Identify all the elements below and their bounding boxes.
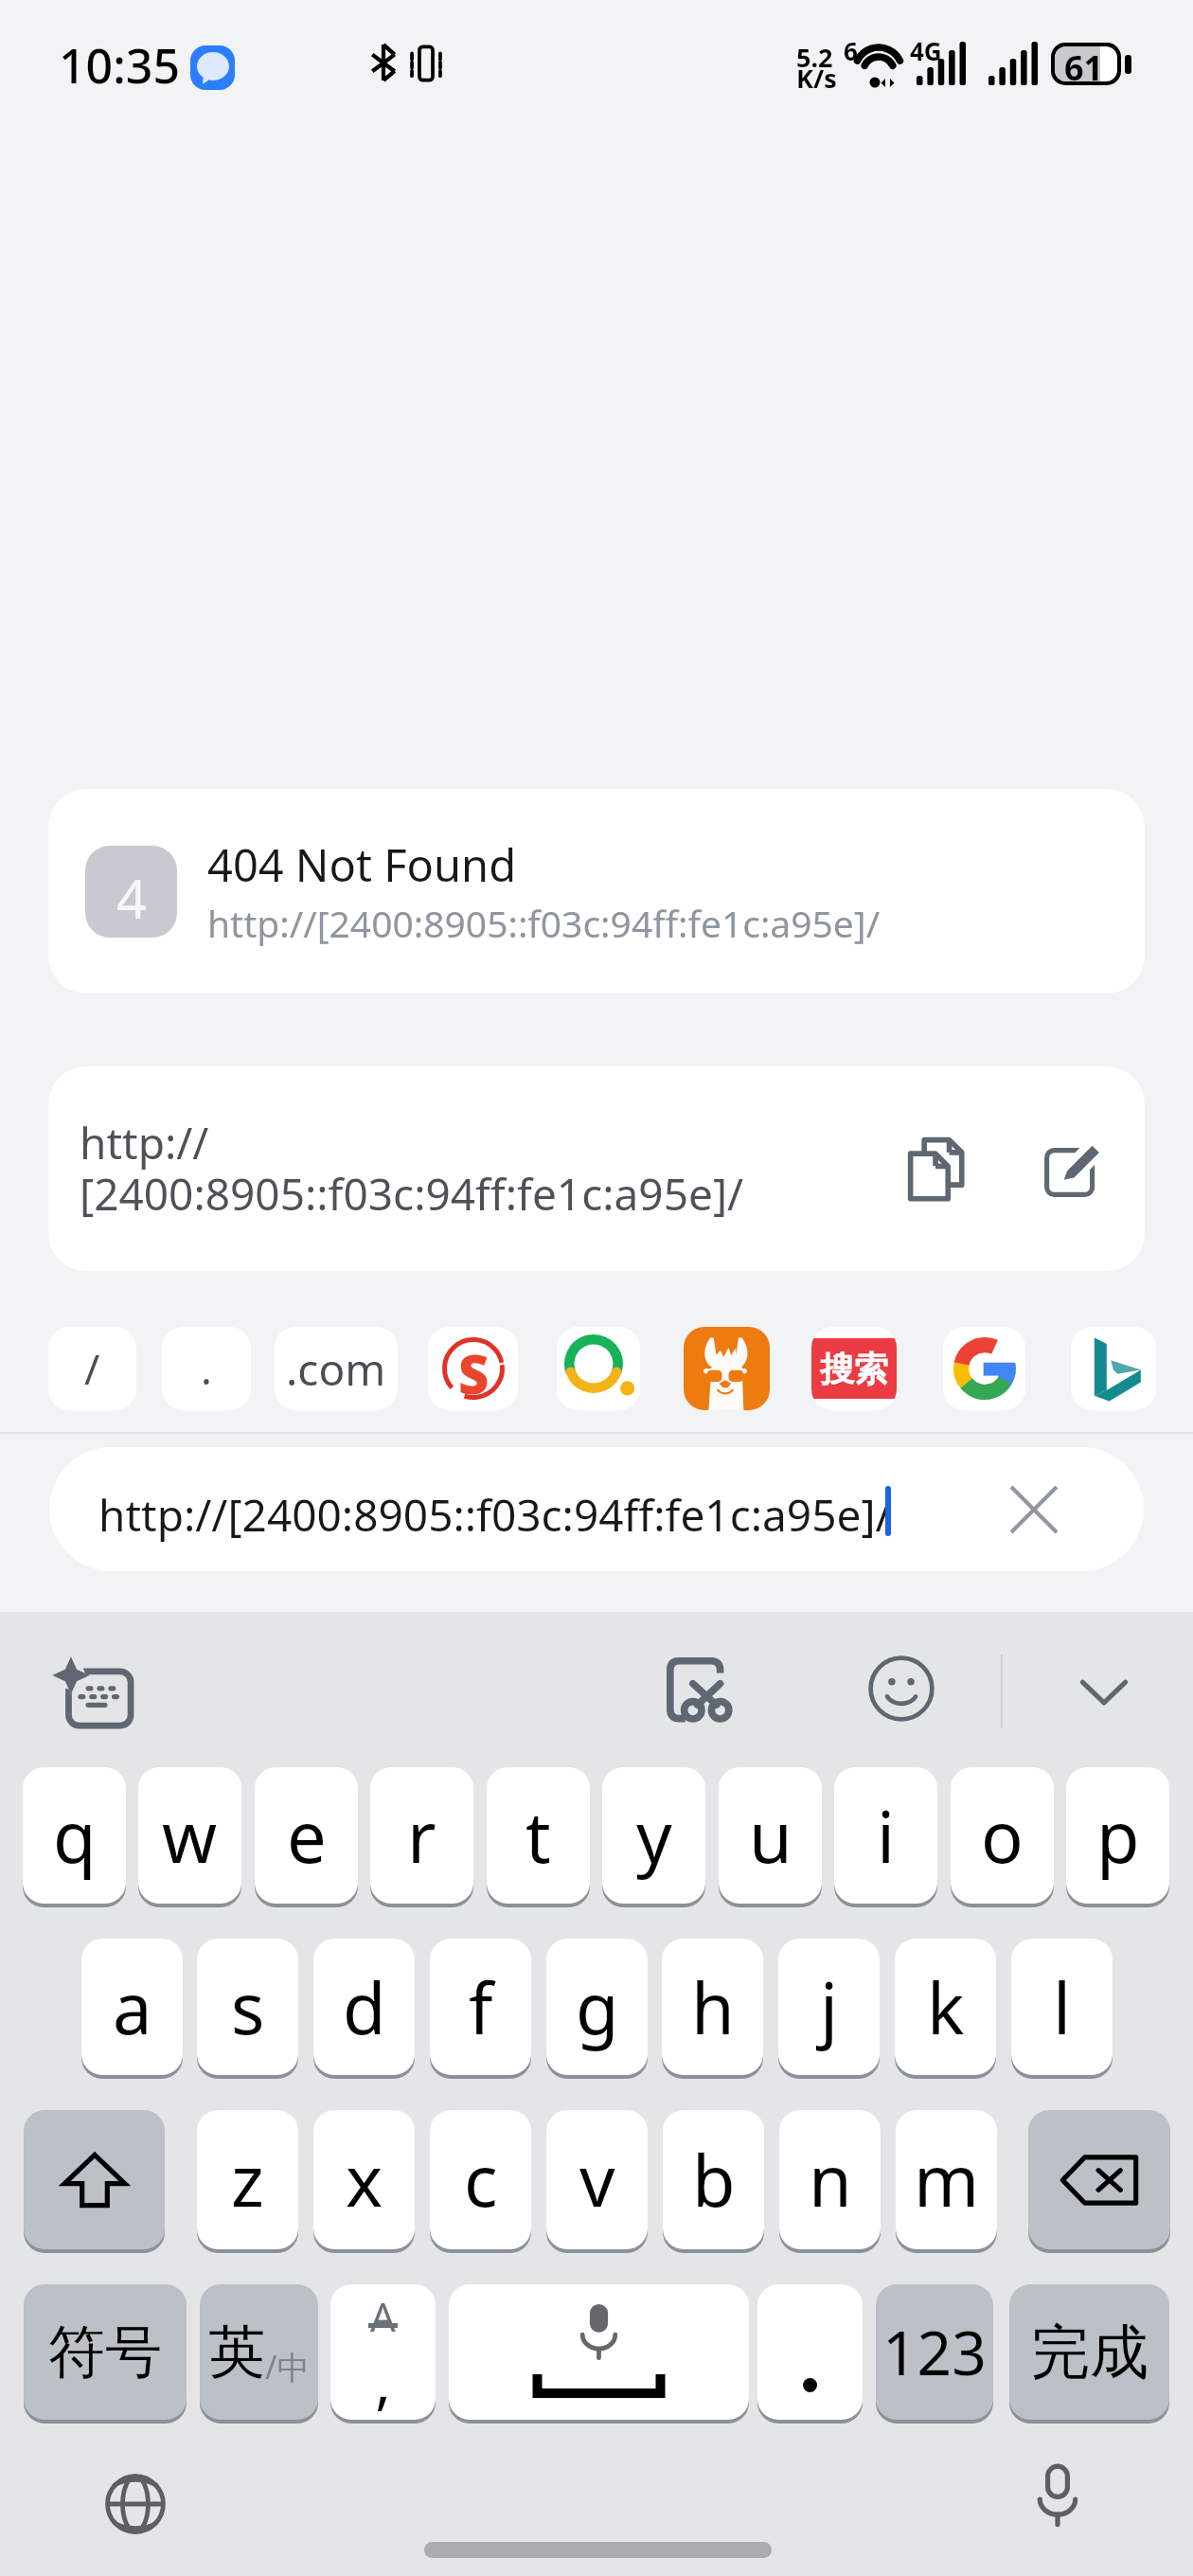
button[interactable]: i xyxy=(834,1767,937,1904)
button[interactable]: m xyxy=(896,2110,997,2249)
staticText: o xyxy=(981,1788,1024,1884)
staticText: p xyxy=(1096,1788,1140,1884)
button[interactable]: 英 xyxy=(200,2284,318,2420)
button[interactable]: o xyxy=(951,1767,1054,1904)
button[interactable]: 搜索 xyxy=(811,1327,897,1410)
button[interactable]: x xyxy=(313,2110,415,2249)
button[interactable]: A xyxy=(330,2284,436,2420)
button[interactable]: 4 xyxy=(48,789,1145,993)
staticText: u xyxy=(749,1788,792,1884)
button[interactable]: g xyxy=(546,1939,648,2075)
button[interactable]: b xyxy=(663,2110,764,2249)
button[interactable]: Backspace xyxy=(1028,2110,1170,2249)
staticText: i xyxy=(877,1788,896,1884)
staticText: y xyxy=(636,1788,672,1884)
button[interactable]: / xyxy=(48,1327,136,1410)
button[interactable]: Hide keyboard xyxy=(1059,1647,1149,1738)
button[interactable]: h xyxy=(662,1939,763,2075)
button[interactable]: c xyxy=(430,2110,531,2249)
button[interactable]: Space xyxy=(449,2284,749,2420)
staticText: , xyxy=(330,2341,436,2420)
staticText: K/s xyxy=(796,61,837,96)
button[interactable]: 符号 xyxy=(24,2284,187,2420)
staticText: z xyxy=(231,2132,264,2227)
button[interactable]: e xyxy=(255,1767,358,1904)
staticText: w xyxy=(162,1788,218,1884)
button[interactable]: y xyxy=(602,1767,705,1904)
staticText: . xyxy=(201,1340,212,1397)
button[interactable]: z xyxy=(197,2110,298,2249)
staticText: 61 xyxy=(1064,45,1104,87)
button[interactable]: n xyxy=(779,2110,881,2249)
staticText: k xyxy=(927,1959,965,2055)
staticText: d xyxy=(343,1959,386,2055)
staticText: x xyxy=(346,2132,383,2227)
staticText: 6 xyxy=(844,34,858,67)
staticText: f xyxy=(469,1959,493,2055)
button[interactable] xyxy=(943,1327,1025,1410)
button[interactable]: v xyxy=(546,2110,648,2249)
staticText: 符号 xyxy=(48,2317,162,2388)
button[interactable]: l xyxy=(1011,1939,1113,2075)
staticText: 搜索 xyxy=(820,1348,888,1390)
staticText: .com xyxy=(286,1339,386,1399)
staticText: http://[2400:8905::f03c:94ff:fe1c:a95e]/ xyxy=(98,1485,892,1545)
button[interactable]: d xyxy=(313,1939,415,2075)
button[interactable]: f xyxy=(430,1939,531,2075)
staticText: e xyxy=(287,1788,327,1884)
staticText: 10:35 xyxy=(59,33,180,98)
button[interactable]: u xyxy=(719,1767,822,1904)
staticText: 4G xyxy=(910,34,942,67)
staticText: 完成 xyxy=(1031,2316,1148,2389)
button[interactable]: s xyxy=(197,1939,298,2075)
button[interactable] xyxy=(557,1327,640,1410)
button[interactable]: AI keyboard xyxy=(51,1650,141,1741)
button[interactable]: http://[2400:8905::f03c:94ff:fe1c:a95e]/ xyxy=(49,1447,1144,1571)
staticText: http:// [2400:8905::f03c:94ff:fe1c:a95e]… xyxy=(80,1113,744,1224)
staticText: l xyxy=(1053,1959,1072,2055)
staticText: j xyxy=(820,1959,839,2055)
button[interactable]: .com xyxy=(275,1327,398,1410)
button[interactable]: q xyxy=(23,1767,126,1904)
button[interactable]: a xyxy=(81,1939,183,2075)
button[interactable]: Clipboard xyxy=(658,1649,749,1740)
staticText: A xyxy=(330,2289,436,2343)
button[interactable]: Voice input xyxy=(1018,2454,1097,2533)
button[interactable]: Clear xyxy=(996,1472,1072,1547)
button[interactable]: Edit xyxy=(1015,1113,1129,1226)
button[interactable]: Change language xyxy=(96,2464,175,2544)
staticText: v xyxy=(579,2132,615,2227)
button[interactable] xyxy=(684,1327,770,1410)
button[interactable]: Shift xyxy=(24,2110,165,2249)
button[interactable]: Emoji xyxy=(856,1643,947,1734)
button[interactable]: 123 xyxy=(876,2284,993,2420)
button[interactable]: t xyxy=(487,1767,590,1904)
staticText: m xyxy=(914,2132,980,2227)
staticText: 123 xyxy=(882,2311,987,2393)
button[interactable]: k xyxy=(895,1939,996,2075)
staticText: / xyxy=(84,1340,100,1397)
button[interactable]: http:// [2400:8905::f03c:94ff:fe1c:a95e]… xyxy=(48,1066,1145,1271)
button[interactable]: j xyxy=(778,1939,880,2075)
staticText: 404 Not Found xyxy=(207,834,517,895)
button[interactable] xyxy=(1071,1327,1156,1410)
staticText: 4 xyxy=(116,862,148,934)
staticText: a xyxy=(113,1959,152,2055)
staticText: 5.2 xyxy=(796,40,833,75)
staticText: 英 xyxy=(208,2317,265,2388)
button[interactable]: 完成 xyxy=(1009,2284,1169,2420)
staticText: r xyxy=(407,1788,436,1884)
staticText: /中 xyxy=(265,2345,310,2388)
button[interactable]: r xyxy=(370,1767,473,1904)
staticText: S xyxy=(458,1337,490,1400)
button[interactable]: w xyxy=(138,1767,241,1904)
button[interactable] xyxy=(757,2284,863,2420)
staticText: c xyxy=(464,2132,498,2227)
button[interactable]: . xyxy=(162,1327,251,1410)
button[interactable]: Copy xyxy=(882,1112,996,1225)
button[interactable]: p xyxy=(1066,1767,1169,1904)
staticText: g xyxy=(576,1959,619,2055)
staticText: h xyxy=(691,1959,735,2055)
button[interactable]: S xyxy=(428,1327,518,1410)
staticText: s xyxy=(231,1959,265,2055)
